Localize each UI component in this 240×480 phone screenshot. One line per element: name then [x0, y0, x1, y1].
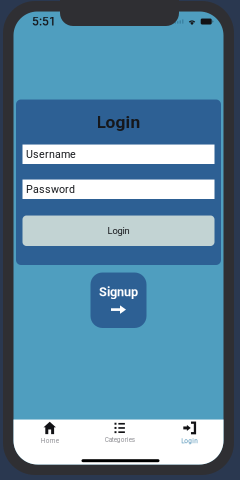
staticText: Login [107, 225, 129, 236]
staticText: Password [26, 183, 75, 195]
button[interactable]: Username [22, 144, 214, 164]
staticText: 5:51 [32, 14, 56, 29]
button[interactable]: Password [22, 179, 214, 199]
button[interactable]: Login [22, 215, 214, 246]
button[interactable]: Categories [85, 423, 155, 451]
staticText: Login [96, 112, 140, 132]
button[interactable]: Signup [90, 272, 146, 328]
staticText: Signup [99, 284, 138, 299]
button[interactable]: Home [15, 423, 85, 451]
staticText: Home [41, 437, 59, 445]
staticText: Categories [105, 436, 135, 444]
staticText: Login [181, 437, 198, 445]
staticText: Username [26, 148, 76, 160]
button[interactable]: Login [155, 423, 225, 451]
